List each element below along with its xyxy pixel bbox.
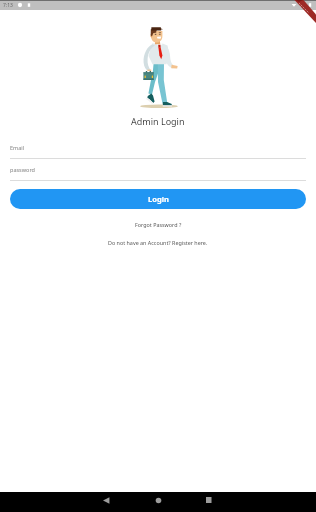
button[interactable]: Back [98,492,114,508]
staticText: password [10,166,35,173]
staticText: Login [148,194,169,204]
button[interactable]: Recent apps [201,492,217,508]
staticText: Email [10,144,25,151]
staticText: 7:13 [3,2,13,9]
staticText: Admin Login [131,115,185,127]
button[interactable]: Login [10,189,306,209]
button[interactable]: Forgot Password ? [131,220,186,229]
button[interactable]: Do not have an Account? Register here. [104,238,212,247]
button[interactable]: Home [150,492,166,508]
